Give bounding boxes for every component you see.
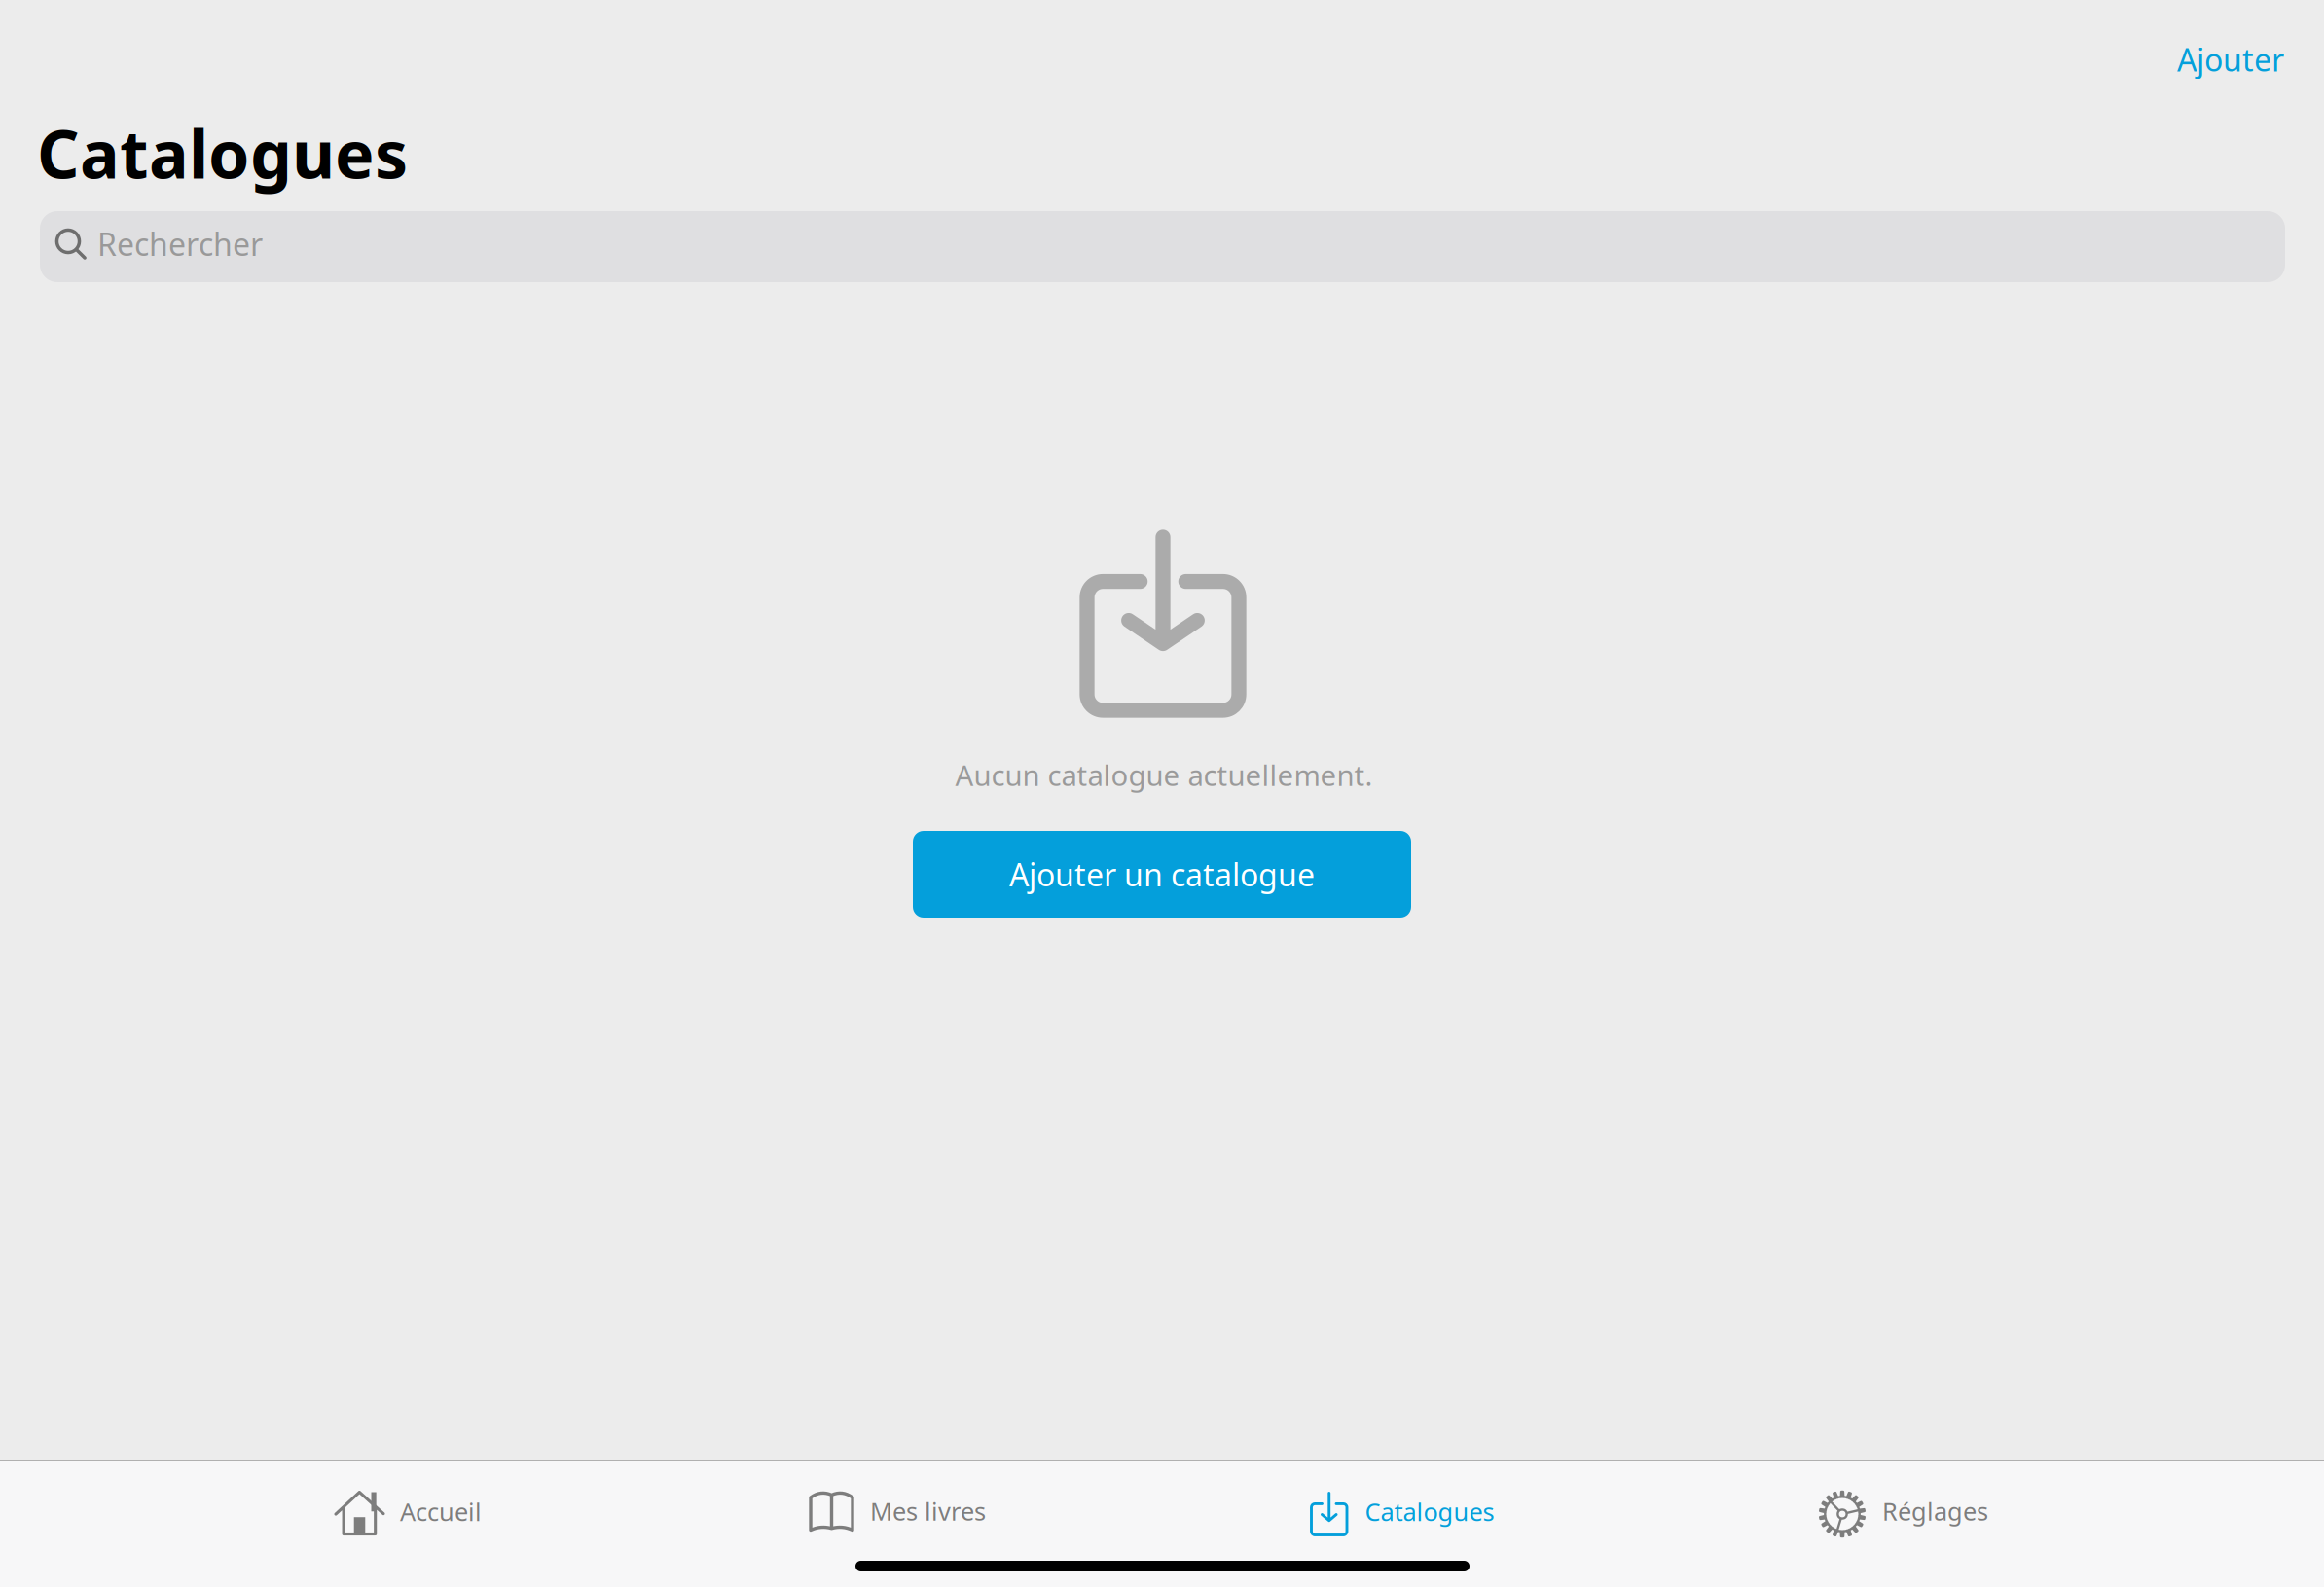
button[interactable]: Accueil <box>307 1458 793 1565</box>
button[interactable]: Catalogues <box>1282 1458 1769 1565</box>
staticText: Catalogues <box>1365 1495 1494 1528</box>
staticText: Réglages <box>1882 1495 1988 1527</box>
button[interactable]: Mes livres <box>781 1458 1268 1565</box>
button[interactable]: Rechercher <box>40 211 2285 282</box>
staticText: Aucun catalogue actuellement. <box>955 756 1373 794</box>
staticText: Mes livres <box>870 1495 986 1527</box>
staticText: Ajouter un catalogue <box>1009 854 1315 895</box>
staticText: Accueil <box>400 1495 482 1528</box>
button[interactable]: Ajouter un catalogue <box>913 831 1411 918</box>
button[interactable]: Ajouter <box>2119 21 2284 97</box>
button[interactable]: Réglages <box>1791 1458 2229 1565</box>
staticText: Catalogues <box>37 109 408 197</box>
staticText: Rechercher <box>97 223 263 264</box>
staticText: Ajouter <box>2177 39 2284 80</box>
